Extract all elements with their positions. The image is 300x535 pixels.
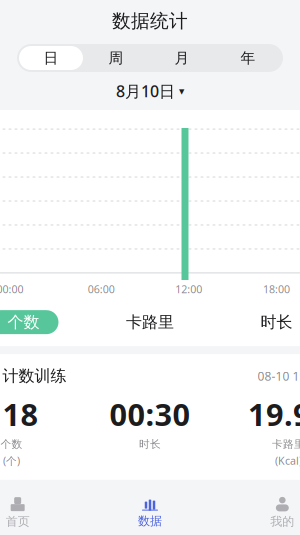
button[interactable]: 卡路里 <box>115 310 185 334</box>
button[interactable]: 日 <box>19 46 83 70</box>
button[interactable]: 我的 <box>216 491 300 535</box>
staticText: ▾ <box>179 85 184 97</box>
button[interactable]: 月 <box>149 46 215 70</box>
staticText: 月 <box>174 49 189 67</box>
staticText: 卡路里 <box>126 312 174 332</box>
button[interactable]: 周 <box>83 46 149 70</box>
staticText: 时长 <box>139 437 161 451</box>
staticText: 00:30 <box>109 394 190 434</box>
staticText: 首页 <box>6 514 30 529</box>
staticText: 19.92 <box>248 394 300 434</box>
staticText: 个数 <box>7 312 39 332</box>
staticText: 118 <box>0 394 38 434</box>
staticText: 周 <box>108 49 123 67</box>
button[interactable]: 首页 <box>0 491 84 535</box>
staticText: 8月10日 <box>116 80 175 102</box>
staticText: 计数训练 <box>2 366 66 386</box>
staticText: 00:00 <box>0 282 23 296</box>
button[interactable]: 8月10日 <box>116 78 184 104</box>
button[interactable]: 个数 <box>0 310 58 334</box>
staticText: 18:00 <box>263 282 290 296</box>
staticText: 年 <box>240 49 255 67</box>
button[interactable]: 年 <box>215 46 281 70</box>
staticText: 06:00 <box>88 282 115 296</box>
staticText: 日 <box>43 49 58 67</box>
staticText: (Kcal) <box>275 454 300 468</box>
staticText: 时长 <box>260 312 292 332</box>
button[interactable]: 时长 <box>241 310 300 334</box>
button[interactable]: 123 <box>0 354 300 480</box>
staticText: 个数 <box>0 437 22 451</box>
staticText: 我的 <box>270 514 294 529</box>
staticText: 08-10 19:16 <box>257 368 300 384</box>
button[interactable]: 数据 <box>84 491 216 535</box>
staticText: 数据统计 <box>112 9 188 32</box>
staticText: 数据 <box>138 514 162 528</box>
staticText: 12:00 <box>175 282 202 296</box>
staticText: 卡路里 <box>272 437 300 451</box>
staticText: (个) <box>3 454 20 468</box>
